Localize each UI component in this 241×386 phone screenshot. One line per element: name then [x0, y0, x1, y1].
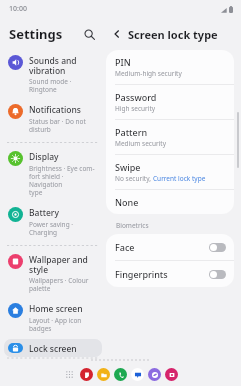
staticText: Display: [29, 151, 59, 163]
button[interactable]: browser: [148, 368, 161, 381]
button[interactable]: Face: [106, 234, 234, 260]
staticText: Face: [115, 241, 209, 253]
button[interactable]: Fingerprints: [106, 261, 234, 287]
staticText: Layout · App icon badges: [29, 316, 82, 333]
staticText: Password: [115, 91, 157, 103]
staticText: Fingerprints: [115, 268, 209, 280]
button[interactable]: Display: [4, 147, 102, 201]
staticText: High security: [115, 104, 156, 113]
button[interactable]: PIN: [106, 50, 234, 84]
staticText: Wallpaper and style: [29, 254, 88, 275]
button[interactable]: Pattern: [106, 120, 234, 154]
button[interactable]: Notifications: [4, 100, 102, 138]
staticText: Home screen: [29, 303, 83, 315]
staticText: Sound mode · Ringtone: [29, 77, 98, 94]
staticText: Sounds and vibration: [29, 55, 77, 76]
staticText: Screen lock type: [128, 27, 218, 42]
button[interactable]: Battery: [4, 203, 102, 241]
staticText: Battery: [29, 207, 59, 219]
button[interactable]: Home screen: [4, 299, 102, 337]
button[interactable]: Swipe: [106, 155, 234, 189]
staticText: Pattern: [115, 126, 148, 138]
staticText: None: [115, 196, 139, 208]
staticText: Medium-high security: [115, 69, 182, 78]
button[interactable]: Search: [80, 25, 98, 43]
staticText: Lock screen: [29, 343, 77, 353]
staticText: Current lock type: [153, 174, 206, 183]
staticText: Swipe: [115, 161, 141, 173]
button[interactable]: All apps: [63, 368, 75, 380]
staticText: Medium security: [115, 139, 166, 148]
button[interactable]: Lock screen: [4, 339, 102, 357]
staticText: Wallpapers · Colour palette: [29, 276, 89, 293]
staticText: Biometrics: [116, 221, 149, 230]
button[interactable]: files: [80, 368, 93, 381]
button[interactable]: folder: [97, 368, 110, 381]
staticText: No security,: [115, 174, 153, 183]
button[interactable]: Password: [106, 85, 234, 119]
button[interactable]: store: [165, 368, 178, 381]
button[interactable]: Sounds and vibration: [4, 51, 102, 98]
staticText: Brightness · Eye com- fort shield · Navi…: [29, 164, 98, 197]
staticText: Settings: [9, 25, 63, 43]
button[interactable]: Wallpaper and style: [4, 250, 102, 297]
staticText: Notifications: [29, 104, 81, 116]
button[interactable]: messages: [131, 368, 144, 381]
button[interactable]: Back: [109, 26, 125, 42]
button[interactable]: phone: [114, 368, 127, 381]
staticText: PIN: [115, 56, 131, 68]
staticText: Status bar · Do not disturb: [29, 117, 86, 134]
staticText: Power saving · Charging: [29, 220, 74, 237]
staticText: 10:00: [9, 4, 27, 14]
button[interactable]: None: [106, 190, 234, 214]
